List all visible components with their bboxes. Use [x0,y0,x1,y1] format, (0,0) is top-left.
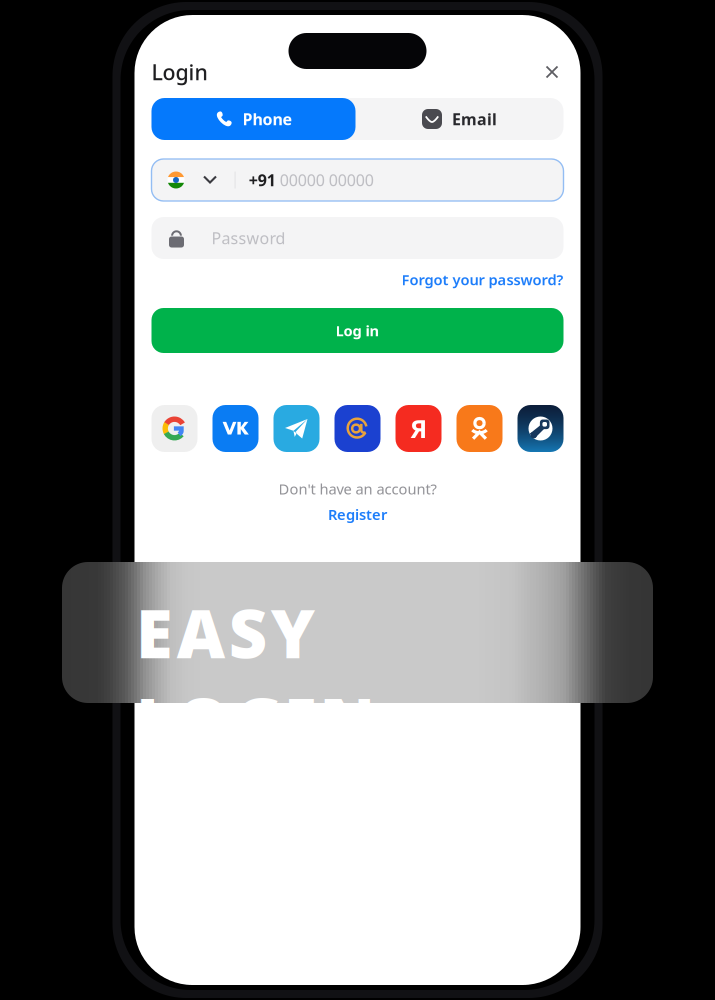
staticText: Don't have an account? [278,479,436,498]
staticText: Login [151,58,207,86]
button[interactable]: Forgot your password? [401,270,563,289]
button[interactable]: Sign in with Mail.ru [334,405,380,452]
button[interactable]: Phone [151,98,355,140]
staticText: Password [211,227,285,249]
button[interactable]: Sign in with Odnoklassniki [456,405,502,452]
staticText: Email [452,108,497,130]
button[interactable]: Sign in with Telegram [273,405,319,452]
staticText: 00000 00000 [280,169,374,191]
button[interactable]: Close [540,60,563,83]
button[interactable]: Log in [151,308,563,353]
staticText: Я [410,412,427,445]
button[interactable]: Email [355,98,563,140]
button[interactable]: Sign in with VK [212,405,258,452]
staticText: Log in [335,321,379,340]
staticText: EASY LOGIN [136,588,579,677]
staticText: Register [328,504,387,524]
button[interactable]: Sign in with Steam [517,405,563,452]
button[interactable]: Sign in with Google [151,405,197,452]
staticText: +91 [249,169,276,191]
staticText: Forgot your password? [401,270,563,289]
staticText: Phone [242,108,292,130]
button[interactable]: Sign in with Yandex [395,405,441,452]
button[interactable]: Register [328,504,387,524]
